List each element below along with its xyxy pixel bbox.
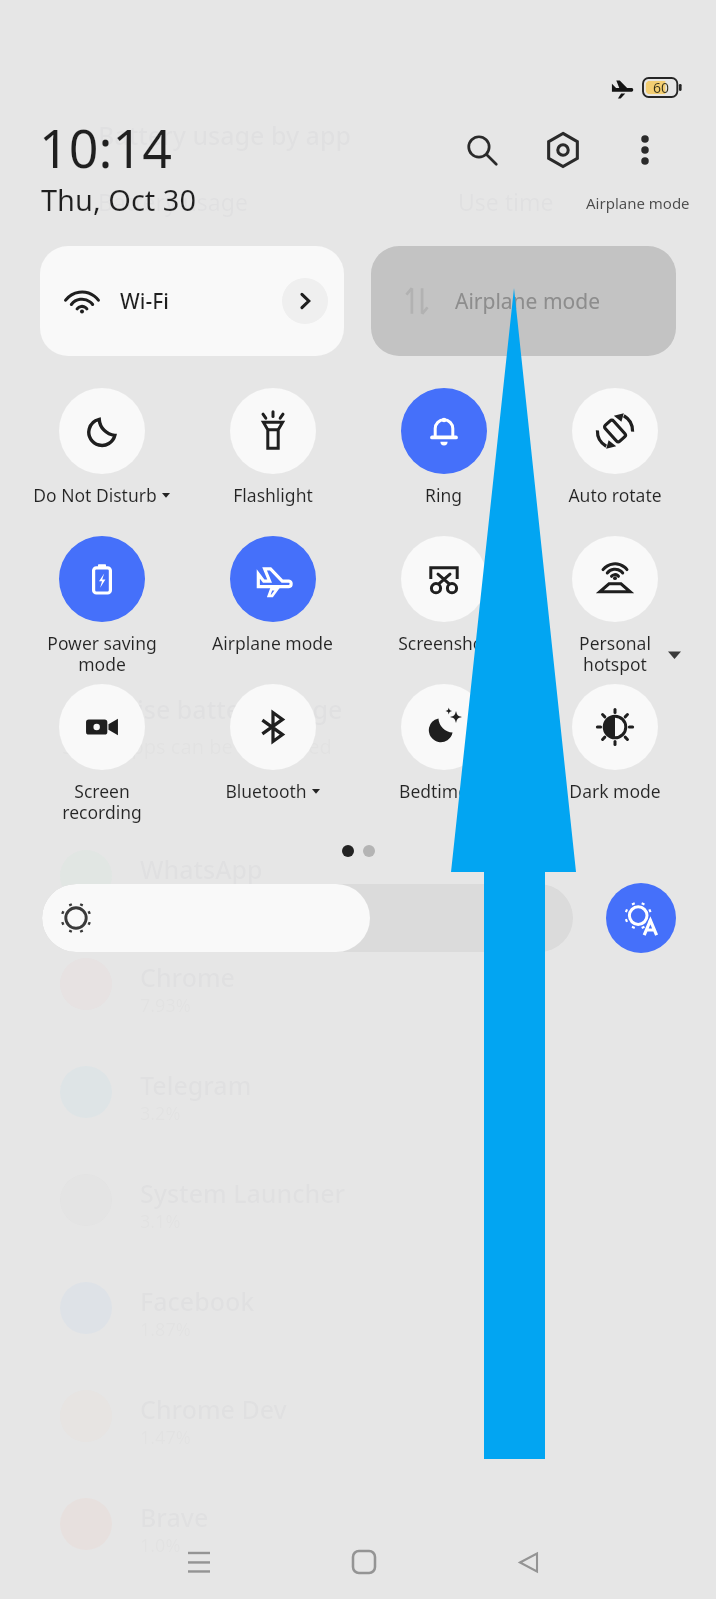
button[interactable]: Personal hotspot xyxy=(529,536,700,676)
button[interactable]: Home xyxy=(328,1526,400,1598)
staticText: Some apps can be optimised xyxy=(62,733,332,760)
staticText: Dark mode xyxy=(569,779,661,803)
button[interactable]: Flashlight xyxy=(187,388,358,507)
staticText: Airplane mode xyxy=(586,193,690,213)
button[interactable]: Ring xyxy=(358,388,529,507)
staticText: Battery usage xyxy=(98,186,248,217)
button[interactable]: More options xyxy=(615,120,675,180)
button[interactable]: Screen recording xyxy=(16,684,187,824)
button[interactable]: Bedtime m xyxy=(358,684,529,803)
button[interactable]: Brightness xyxy=(42,884,573,952)
staticText: Power saving mode xyxy=(47,631,157,676)
button[interactable]: Settings xyxy=(533,120,593,180)
staticText: Battery usage by app xyxy=(98,118,351,152)
button[interactable]: Power saving mode xyxy=(16,536,187,676)
staticText: Airplane mode xyxy=(212,631,333,655)
button[interactable]: Wi-Fi xyxy=(40,246,344,356)
button[interactable]: Auto brightness xyxy=(606,883,676,953)
staticText: 60 xyxy=(653,78,670,97)
staticText: Bedtime m xyxy=(399,779,489,803)
button[interactable]: Bluetooth xyxy=(187,684,358,803)
button[interactable]: Auto rotate xyxy=(529,388,700,507)
staticText: Auto rotate xyxy=(568,483,662,507)
staticText: Wi-Fi xyxy=(120,287,169,316)
staticText: WhatsApp xyxy=(140,852,263,886)
staticText: 10:14 xyxy=(39,112,172,183)
button[interactable]: Search xyxy=(452,120,512,180)
staticText: Thu, Oct 30 xyxy=(41,180,197,219)
button[interactable]: Recent apps xyxy=(163,1526,235,1598)
button[interactable]: Airplane mode xyxy=(187,536,358,655)
staticText: Flashlight xyxy=(233,483,313,507)
staticText: Screen recording xyxy=(62,779,142,824)
button[interactable]: Dark mode xyxy=(529,684,700,803)
staticText: Screenshot xyxy=(398,631,490,655)
button[interactable]: Do Not Disturb xyxy=(16,388,187,507)
staticText: Do Not Disturb xyxy=(33,483,157,507)
button[interactable]: Screenshot xyxy=(358,536,529,655)
staticText: Ring xyxy=(425,483,462,507)
staticText: Bluetooth xyxy=(225,779,307,803)
staticText: Optimise battery usage xyxy=(62,692,343,726)
button[interactable]: Back xyxy=(492,1526,564,1598)
staticText: Personal hotspot xyxy=(579,631,651,676)
staticText: Airplane mode xyxy=(455,287,601,316)
button[interactable]: Airplane mode xyxy=(371,246,676,356)
